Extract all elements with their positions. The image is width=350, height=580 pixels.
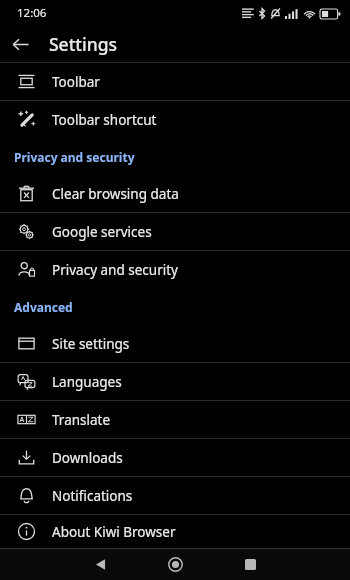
button[interactable]: Notifications (0, 477, 350, 514)
staticText: Translate (52, 411, 111, 429)
staticText: Notifications (52, 487, 133, 505)
button[interactable]: Languages (0, 363, 350, 400)
staticText: Toolbar (52, 73, 100, 91)
staticText: Languages (52, 373, 122, 391)
staticText: Privacy and security (14, 149, 135, 165)
button[interactable]: Clear browsing data (0, 175, 350, 212)
staticText: About Kiwi Browser (52, 523, 176, 541)
button[interactable]: Site settings (0, 325, 350, 362)
button[interactable]: Downloads (0, 439, 350, 476)
staticText: Advanced (14, 299, 73, 315)
staticText: Google services (52, 223, 152, 241)
button[interactable]: Privacy and security (0, 251, 350, 288)
staticText: Clear browsing data (52, 185, 179, 203)
button[interactable]: Google services (0, 213, 350, 250)
button[interactable]: About Kiwi Browser (0, 515, 350, 548)
staticText: Downloads (52, 449, 123, 467)
button[interactable]: Toolbar (0, 63, 350, 100)
staticText: Settings (49, 32, 118, 56)
button[interactable]: Back (63, 549, 138, 580)
button[interactable]: Home (138, 549, 213, 580)
button[interactable]: Translate (0, 401, 350, 438)
button[interactable]: Toolbar shortcut (0, 101, 350, 138)
staticText: Privacy and security (52, 261, 178, 279)
button[interactable]: Back (0, 26, 40, 62)
button[interactable]: Recents (213, 549, 288, 580)
staticText: Toolbar shortcut (52, 111, 157, 129)
staticText: Site settings (52, 335, 130, 353)
staticText: 12:06 (17, 5, 47, 21)
